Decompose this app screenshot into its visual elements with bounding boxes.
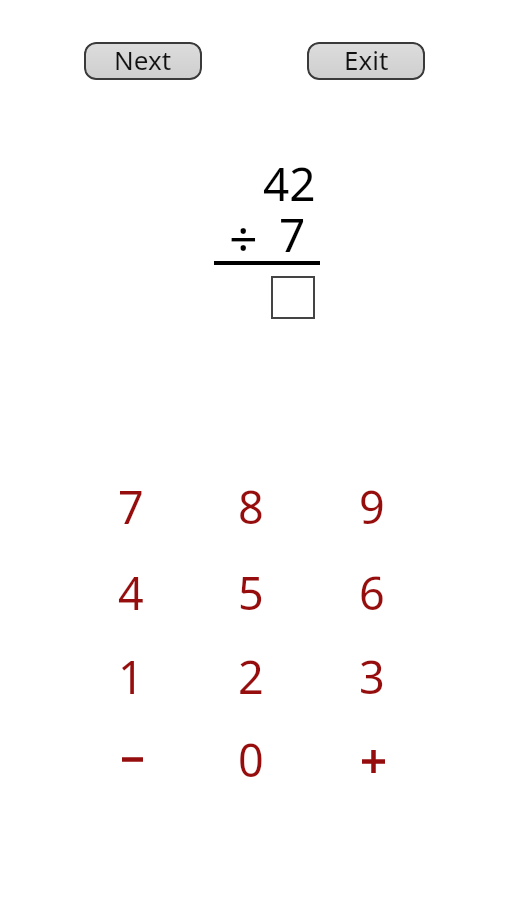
staticText: 4 xyxy=(118,562,144,623)
staticText: 7 xyxy=(118,476,144,537)
button[interactable]: 2 xyxy=(196,635,306,717)
button[interactable]: 3 xyxy=(317,635,427,717)
button[interactable] xyxy=(317,718,427,800)
staticText: 5 xyxy=(238,562,264,623)
staticText: 6 xyxy=(359,562,385,623)
button[interactable]: 7 xyxy=(76,465,186,547)
button[interactable]: 4 xyxy=(76,551,186,633)
staticText: Next xyxy=(114,42,172,77)
staticText: 2 xyxy=(238,646,264,707)
button[interactable]: 8 xyxy=(196,465,306,547)
button[interactable]: Next xyxy=(84,42,202,80)
staticText: 1 xyxy=(118,646,144,707)
button[interactable]: 1 xyxy=(76,635,186,717)
button[interactable]: Exit xyxy=(307,42,425,80)
staticText: 0 xyxy=(238,729,264,790)
staticText: 8 xyxy=(238,476,264,537)
button[interactable]: 5 xyxy=(196,551,306,633)
staticText: Exit xyxy=(344,42,389,77)
button[interactable]: 0 xyxy=(196,718,306,800)
staticText: 42 xyxy=(263,152,316,215)
staticText: 3 xyxy=(359,646,385,707)
button[interactable] xyxy=(76,718,186,800)
staticText: 7 xyxy=(279,203,306,266)
staticText: ÷ xyxy=(229,204,258,272)
staticText: 9 xyxy=(359,476,385,537)
button[interactable]: 6 xyxy=(317,551,427,633)
button[interactable]: 9 xyxy=(317,465,427,547)
